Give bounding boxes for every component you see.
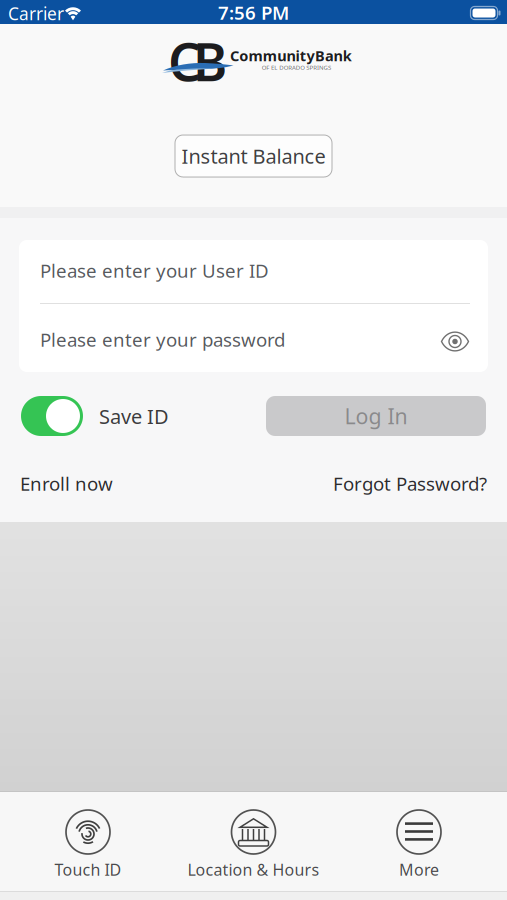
button[interactable]: Location & Hours	[176, 792, 331, 891]
staticText: Location & Hours	[187, 859, 319, 880]
staticText: Forgot Password?	[333, 471, 487, 496]
button[interactable]: Instant Balance	[175, 135, 332, 177]
button[interactable]: Log In	[266, 396, 486, 436]
button[interactable]: Enroll now	[20, 471, 113, 496]
staticText: More	[399, 859, 439, 880]
staticText: Please enter your password	[40, 327, 285, 352]
button[interactable]: More	[331, 792, 507, 891]
staticText: OF EL DORADO SPRINGS	[211, 58, 381, 77]
staticText: 7:56 PM	[218, 0, 289, 25]
staticText: Save ID	[99, 403, 169, 430]
staticText: Instant Balance	[181, 143, 325, 169]
staticText: Please enter your User ID	[40, 258, 269, 283]
staticText: Enroll now	[20, 471, 113, 496]
staticText: Touch ID	[54, 859, 121, 880]
staticText: CommunityBank	[218, 44, 363, 67]
staticText: C	[168, 26, 201, 96]
staticText: B	[193, 26, 227, 96]
button[interactable]: Save ID	[21, 396, 83, 436]
button[interactable]: Forgot Password?	[333, 471, 487, 496]
staticText: Carrier	[8, 2, 64, 25]
button[interactable]: Show password	[440, 330, 470, 352]
button[interactable]: Touch ID	[0, 792, 176, 891]
staticText: Log In	[344, 402, 407, 430]
